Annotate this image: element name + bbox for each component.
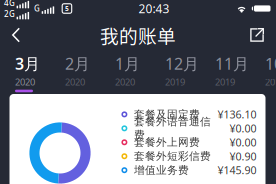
staticText: 11月: [215, 53, 249, 74]
staticText: 增值业务费: [134, 164, 189, 177]
button[interactable]: 2月: [65, 53, 115, 92]
staticText: 套餐外上网费: [134, 136, 200, 149]
staticText: 10月: [265, 53, 276, 74]
staticText: 2019: [165, 76, 185, 88]
staticText: 我的账单: [100, 21, 176, 48]
staticText: 5: [65, 4, 69, 13]
button[interactable]: 11月: [215, 53, 265, 92]
button[interactable]: 12月: [165, 53, 215, 92]
staticText: ¥0.00: [229, 121, 256, 135]
staticText: 2020: [15, 76, 35, 88]
button[interactable]: Share: [242, 20, 272, 50]
staticText: 20:43: [138, 0, 169, 16]
staticText: 4G: [4, 0, 15, 8]
staticText: 套餐及固定费: [134, 108, 200, 121]
staticText: ¥145.90: [217, 163, 256, 177]
staticText: 12月: [165, 53, 199, 74]
button[interactable]: 10月: [265, 53, 276, 92]
button[interactable]: Back: [1, 20, 31, 50]
staticText: 2G: [4, 9, 15, 19]
staticText: ¥0.90: [229, 149, 256, 163]
staticText: 2019: [215, 76, 235, 88]
staticText: 2020: [65, 76, 85, 88]
button[interactable]: 1月: [115, 53, 165, 92]
staticText: ¥0.00: [229, 135, 256, 149]
staticText: 2月: [65, 53, 90, 74]
staticText: 套餐外短彩信费: [134, 150, 211, 163]
staticText: 2019: [265, 76, 276, 88]
staticText: 3月: [15, 53, 40, 74]
staticText: ¥136.10: [217, 107, 256, 121]
staticText: G: [34, 3, 40, 14]
staticText: 套餐外语音通信费: [134, 115, 211, 141]
staticText: 2020: [115, 76, 135, 88]
staticText: 1月: [115, 53, 140, 74]
button[interactable]: 3月: [15, 53, 65, 92]
